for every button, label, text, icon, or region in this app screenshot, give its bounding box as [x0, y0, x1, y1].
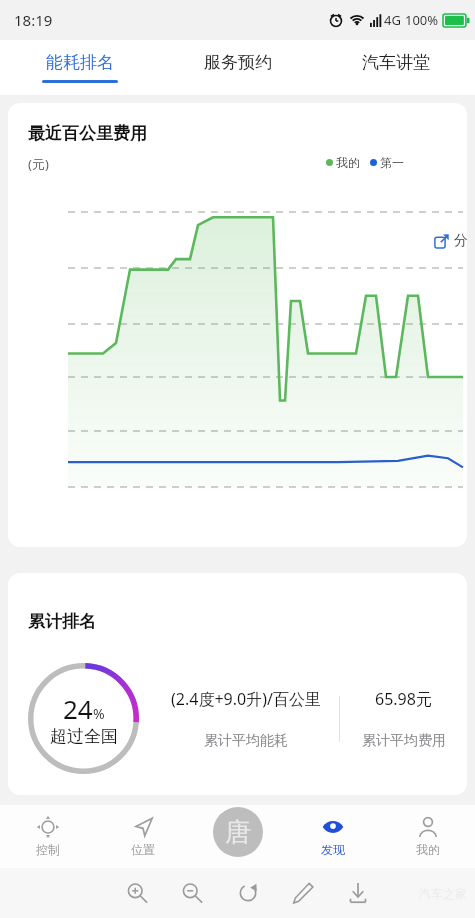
- staticText: %: [93, 704, 105, 723]
- button[interactable]: 分享: [422, 225, 467, 257]
- button[interactable]: 能耗排名: [0, 40, 159, 95]
- staticText: 我的: [336, 155, 360, 170]
- staticText: 唐: [225, 816, 251, 849]
- button[interactable]: 缩小: [175, 876, 209, 910]
- button[interactable]: 唐: [213, 807, 263, 857]
- staticText: 服务预约: [204, 52, 272, 73]
- button[interactable]: 放大: [120, 876, 154, 910]
- button[interactable]: 下载: [341, 876, 375, 910]
- button[interactable]: 发现: [285, 805, 380, 868]
- staticText: 控制: [36, 842, 60, 857]
- button[interactable]: 位置: [95, 805, 190, 868]
- staticText: 发现: [321, 842, 345, 857]
- staticText: 最近百公里费用: [28, 123, 147, 144]
- staticText: 24: [63, 691, 93, 726]
- staticText: (2.4度+9.0升)/百公里: [171, 688, 321, 710]
- staticText: (元): [28, 155, 49, 173]
- button[interactable]: 汽车讲堂: [317, 40, 475, 95]
- button[interactable]: 刷新: [231, 876, 265, 910]
- staticText: 位置: [131, 842, 155, 857]
- staticText: 分享: [454, 232, 467, 250]
- staticText: 65.98元: [375, 688, 432, 710]
- staticText: 累计平均能耗: [204, 732, 288, 750]
- staticText: 能耗排名: [46, 52, 114, 73]
- staticText: 超过全国: [50, 726, 118, 747]
- staticText: 我的: [416, 842, 440, 857]
- button[interactable]: 编辑: [286, 876, 320, 910]
- staticText: 第一: [380, 155, 404, 170]
- staticText: 累计平均费用: [362, 732, 446, 750]
- staticText: 累计排名: [28, 611, 96, 632]
- staticText: 4G: [384, 11, 401, 29]
- staticText: 汽车讲堂: [362, 52, 430, 73]
- staticText: 18:19: [14, 10, 53, 30]
- button[interactable]: 控制: [0, 805, 95, 868]
- button[interactable]: 我的: [380, 805, 475, 868]
- button[interactable]: 服务预约: [159, 40, 317, 95]
- staticText: 汽车之家: [419, 886, 467, 901]
- staticText: 100%: [405, 11, 439, 29]
